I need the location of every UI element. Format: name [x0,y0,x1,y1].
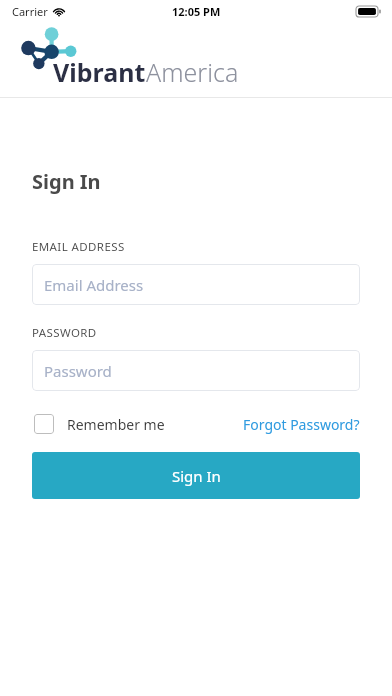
button[interactable]: Sign In [32,452,360,499]
staticText: Sign In [32,168,101,195]
staticText: America [146,55,239,89]
staticText: 12:05 PM [172,4,221,19]
button[interactable]: Email Address [32,264,360,305]
button[interactable]: Remember me [32,410,167,438]
staticText: Password [44,361,112,381]
button[interactable]: Forgot Password? [243,411,360,438]
button[interactable]: Password [32,350,360,391]
staticText: Remember me [67,415,165,434]
staticText: Carrier [12,4,48,19]
staticText: Forgot Password? [243,415,360,434]
staticText: Email Address [44,275,144,295]
staticText: PASSWORD [32,325,97,341]
staticText: Sign In [172,466,221,486]
staticText: Vibrant [53,55,146,89]
staticText: EMAIL ADDRESS [32,239,125,255]
